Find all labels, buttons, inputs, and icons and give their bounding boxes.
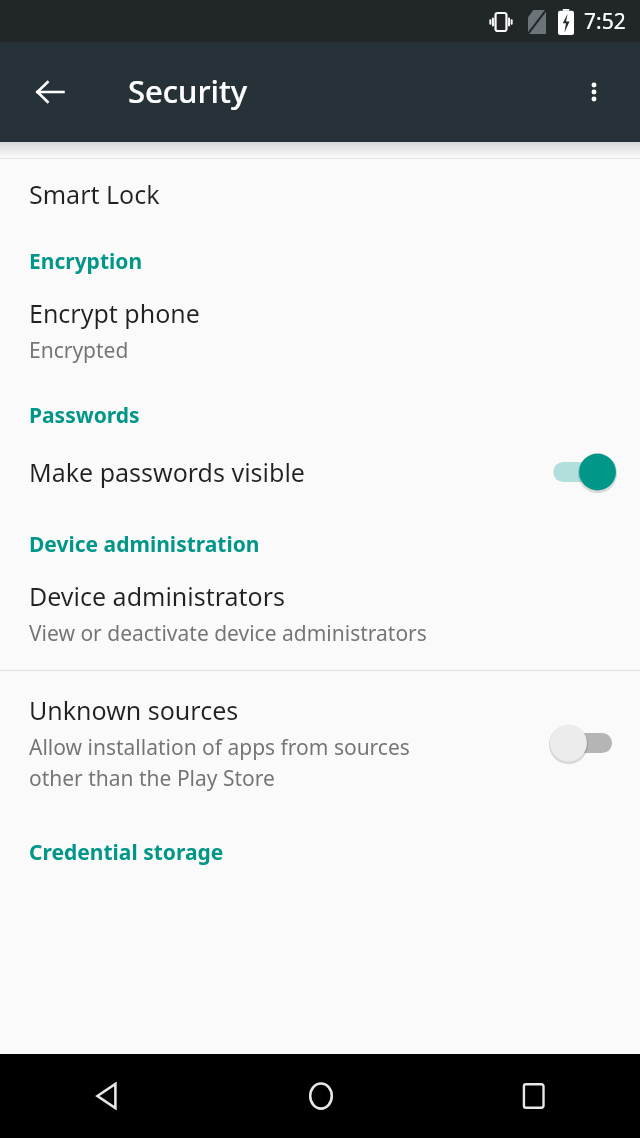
button[interactable]: Make passwords visible [550,450,616,494]
staticText: Unknown sources [29,693,239,727]
staticText: Make passwords visible [29,455,305,489]
staticText: Encryption [29,247,143,276]
button[interactable]: Smart Lock [0,177,640,211]
button[interactable]: Make passwords visible [0,450,640,494]
button[interactable]: Back [0,1054,214,1138]
staticText: Passwords [29,401,140,430]
staticText: Encrypt phone [29,296,200,330]
staticText: Credential storage [29,838,224,867]
staticText: 7:52 [584,7,626,36]
staticText: Smart Lock [29,177,160,211]
button[interactable]: Unknown sources [550,721,616,765]
button[interactable]: More options [566,64,622,120]
staticText: Encrypted [29,336,129,365]
button[interactable]: Encrypt phone [0,296,640,365]
button[interactable]: Device administrators [0,579,640,648]
staticText: Device administration [29,530,260,559]
staticText: Security [128,70,248,112]
button[interactable]: Recent apps [427,1054,640,1138]
button[interactable]: Home [214,1054,427,1138]
button[interactable]: Back [22,64,78,120]
staticText: Device administrators [29,579,286,613]
button[interactable]: Unknown sources [0,693,640,792]
staticText: Allow installation of apps from sources … [29,733,410,792]
staticText: View or deactivate device administrators [29,619,427,648]
